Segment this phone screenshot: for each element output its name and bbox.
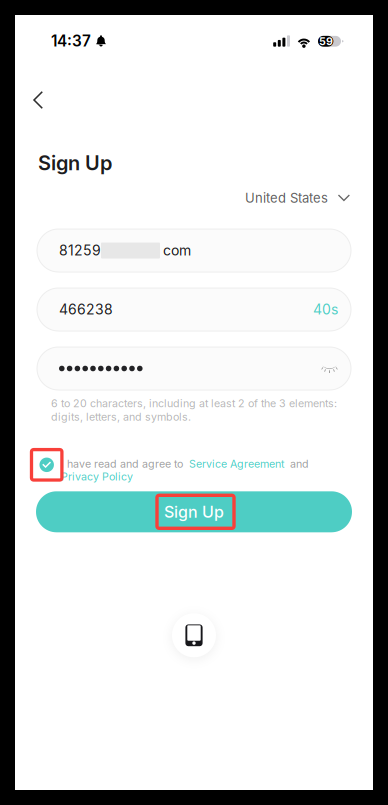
staticText: com [163,242,191,259]
staticText: I have read and agree to Service Agreeme… [61,457,309,483]
button[interactable]: Back [15,74,73,120]
button[interactable]: Show password [321,363,338,373]
staticText: United States [245,190,328,206]
staticText: Sign Up [164,502,224,521]
button[interactable]: 40s [313,301,338,318]
button[interactable]: I have read and agree to Service Agreeme… [61,457,323,483]
staticText: 466238 [59,301,113,318]
staticText: 40s [313,301,338,318]
staticText: Sign Up [38,151,112,175]
button[interactable]: Agree to terms [31,449,62,480]
staticText: 59 [319,35,333,48]
button[interactable]: United States [233,184,373,212]
staticText: 6 to 20 characters, including at least 2… [51,397,337,410]
staticText: 14:37 [51,32,91,50]
staticText: 81259 [59,242,101,259]
button[interactable]: Sign Up [36,491,352,532]
button[interactable]: Phone sign in [170,611,218,659]
staticText: digits, letters, and symbols. [51,410,191,423]
